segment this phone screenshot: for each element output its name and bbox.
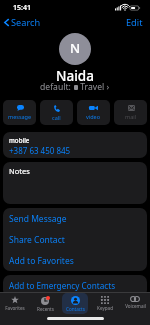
staticText: Notes xyxy=(9,166,30,176)
staticText: 15:41 xyxy=(13,3,31,13)
staticText: Share Contact xyxy=(9,234,65,246)
staticText: Add to Favorites xyxy=(9,255,74,267)
button[interactable]: message xyxy=(3,100,36,125)
button[interactable]: Add to Favorites xyxy=(3,250,147,271)
button[interactable]: video xyxy=(77,100,110,125)
staticText: video xyxy=(86,113,101,120)
button[interactable]: call xyxy=(40,100,73,125)
button[interactable]: mobile xyxy=(3,132,147,158)
staticText: Keypad xyxy=(97,305,113,311)
button[interactable]: mail xyxy=(114,100,147,125)
staticText: Travel › xyxy=(78,81,110,93)
button[interactable]: Keypad xyxy=(92,293,118,313)
staticText: Favorites xyxy=(5,305,25,311)
staticText: call xyxy=(52,114,61,121)
button[interactable]: Favorites xyxy=(2,293,28,313)
staticText: Add to Emergency Contacts xyxy=(9,280,116,291)
staticText: mail xyxy=(125,113,137,120)
staticText: Naida xyxy=(56,67,94,85)
button[interactable]: Share Contact xyxy=(3,229,147,250)
button[interactable]: Edit xyxy=(126,16,143,28)
button[interactable]: Notes xyxy=(3,162,147,204)
staticText: Send Message xyxy=(9,213,67,225)
staticText: Edit xyxy=(126,16,143,28)
staticText: Voicemail xyxy=(125,303,146,309)
button[interactable]: Contacts xyxy=(62,293,88,314)
staticText: Search xyxy=(11,16,41,28)
staticText: message xyxy=(8,113,32,120)
button[interactable]: Add to Emergency Contacts xyxy=(3,275,147,297)
staticText: default: xyxy=(40,81,74,93)
staticText: Recents xyxy=(37,306,54,312)
button[interactable]: Recents xyxy=(32,293,58,314)
button[interactable]: Voicemail xyxy=(122,293,148,311)
staticText: +387 63 450 845 xyxy=(9,145,71,156)
button[interactable]: Send Message xyxy=(3,208,147,229)
staticText: N xyxy=(70,39,81,57)
button[interactable]: Search xyxy=(4,16,41,28)
staticText: mobile xyxy=(9,136,30,144)
staticText: Contacts xyxy=(66,306,85,312)
